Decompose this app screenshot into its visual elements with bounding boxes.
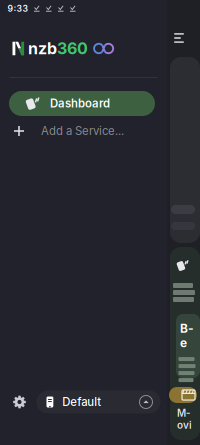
button[interactable]: Menu: [170, 29, 192, 47]
staticText: Be: [180, 321, 193, 350]
staticText: 9:33: [7, 3, 28, 14]
staticText: 360: [57, 39, 88, 58]
button[interactable]: Movies: [169, 387, 197, 403]
button[interactable]: Default: [36, 390, 160, 413]
button[interactable]: Dashboard: [9, 91, 155, 116]
staticText: Add a Service...: [41, 124, 124, 138]
button[interactable]: Settings: [7, 390, 31, 414]
button[interactable]: Add a Service...: [9, 118, 155, 144]
staticText: Movi: [177, 407, 192, 431]
staticText: Dashboard: [50, 97, 110, 110]
staticText: nzb: [28, 39, 57, 58]
staticText: Default: [62, 395, 101, 409]
